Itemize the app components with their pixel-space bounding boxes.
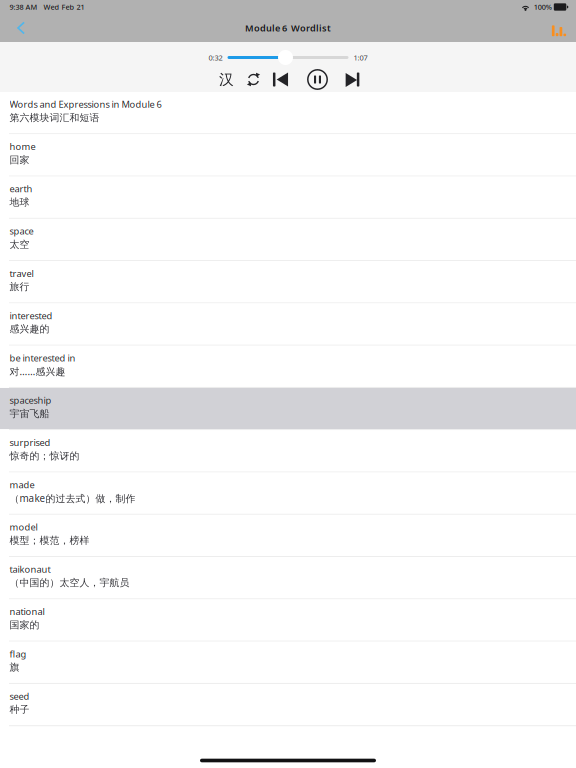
staticText: 旅行 [9, 280, 29, 293]
button[interactable]: flag [0, 642, 576, 684]
button[interactable]: space [0, 219, 576, 261]
staticText: 感兴趣的 [9, 323, 49, 335]
button[interactable]: Pause [305, 69, 329, 90]
button[interactable]: taikonaut [0, 557, 576, 599]
staticText: interested [9, 309, 52, 322]
staticText: 0:32 [208, 52, 222, 63]
button[interactable]: Words and Expressions in Module 6 [0, 92, 576, 134]
button[interactable]: Next [340, 69, 364, 89]
button[interactable]: Previous [268, 69, 292, 89]
staticText: 对……感兴趣 [9, 365, 65, 378]
staticText: earth [9, 182, 32, 195]
staticText: national [9, 605, 44, 618]
staticText: 种子 [9, 703, 29, 716]
button[interactable]: travel [0, 261, 576, 303]
staticText: （make的过去式）做，制作 [9, 491, 135, 505]
button[interactable]: national [0, 599, 576, 642]
button[interactable]: spaceship [0, 388, 576, 430]
staticText: 回家 [9, 154, 29, 166]
button[interactable]: interested [0, 303, 576, 346]
staticText: 旗 [9, 661, 19, 673]
button[interactable]: home [0, 134, 576, 177]
button[interactable]: Audio settings [549, 12, 576, 44]
staticText: Module 6 Wordlist [245, 22, 331, 34]
staticText: model [9, 521, 37, 533]
staticText: 地球 [9, 196, 29, 208]
staticText: made [9, 478, 34, 491]
staticText: be interested in [9, 351, 75, 364]
staticText: 汉 [219, 70, 234, 89]
staticText: travel [9, 267, 33, 280]
staticText: 1:07 [353, 52, 367, 63]
staticText: 9:38 AM Wed Feb 21 [9, 2, 84, 12]
staticText: （中国的）太空人，宇航员 [9, 576, 129, 589]
staticText: 惊奇的；惊讶的 [9, 450, 79, 462]
button[interactable]: surprised [0, 430, 576, 472]
staticText: 第六模块词汇和短语 [9, 111, 99, 124]
button[interactable]: Repeat [241, 69, 265, 89]
button[interactable]: Toggle Chinese [214, 69, 238, 89]
staticText: seed [9, 690, 29, 702]
staticText: surprised [9, 436, 50, 449]
staticText: space [9, 225, 33, 237]
staticText: 太空 [9, 238, 29, 251]
button[interactable]: be interested in [0, 346, 576, 388]
button[interactable]: earth [0, 177, 576, 219]
staticText: taikonaut [9, 563, 50, 576]
staticText: spaceship [9, 394, 51, 406]
button[interactable]: seed [0, 684, 576, 726]
staticText: 模型；模范，榜样 [9, 534, 89, 547]
staticText: home [9, 140, 35, 153]
staticText: 宇宙飞船 [9, 407, 49, 420]
button[interactable]: Back [0, 14, 41, 42]
button[interactable]: model [0, 515, 576, 557]
button[interactable]: made [0, 472, 576, 515]
staticText: flag [9, 647, 26, 660]
staticText: 100% [530, 2, 554, 12]
staticText: Words and Expressions in Module 6 [9, 98, 161, 110]
staticText: 国家的 [9, 619, 39, 631]
